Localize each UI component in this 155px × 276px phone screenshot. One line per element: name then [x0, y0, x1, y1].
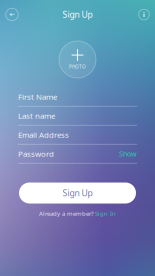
staticText: First Name	[18, 91, 57, 102]
staticText: Sign Up	[62, 187, 92, 199]
button[interactable]: Show	[119, 149, 137, 158]
staticText: Password	[18, 148, 54, 159]
staticText: Last name	[18, 110, 55, 121]
button[interactable]: Sign Up	[19, 182, 136, 203]
staticText: PHOTO	[69, 64, 86, 70]
staticText: Show	[119, 149, 137, 158]
staticText: Already a member?	[39, 209, 94, 218]
button[interactable]: Sign In	[95, 209, 116, 218]
button[interactable]: Information	[132, 2, 155, 26]
button[interactable]: Add photo	[57, 39, 97, 79]
staticText: Sign In	[95, 209, 116, 218]
button[interactable]: Back	[0, 2, 24, 26]
staticText: Email Address	[18, 129, 69, 140]
staticText: Sign Up	[62, 9, 92, 20]
